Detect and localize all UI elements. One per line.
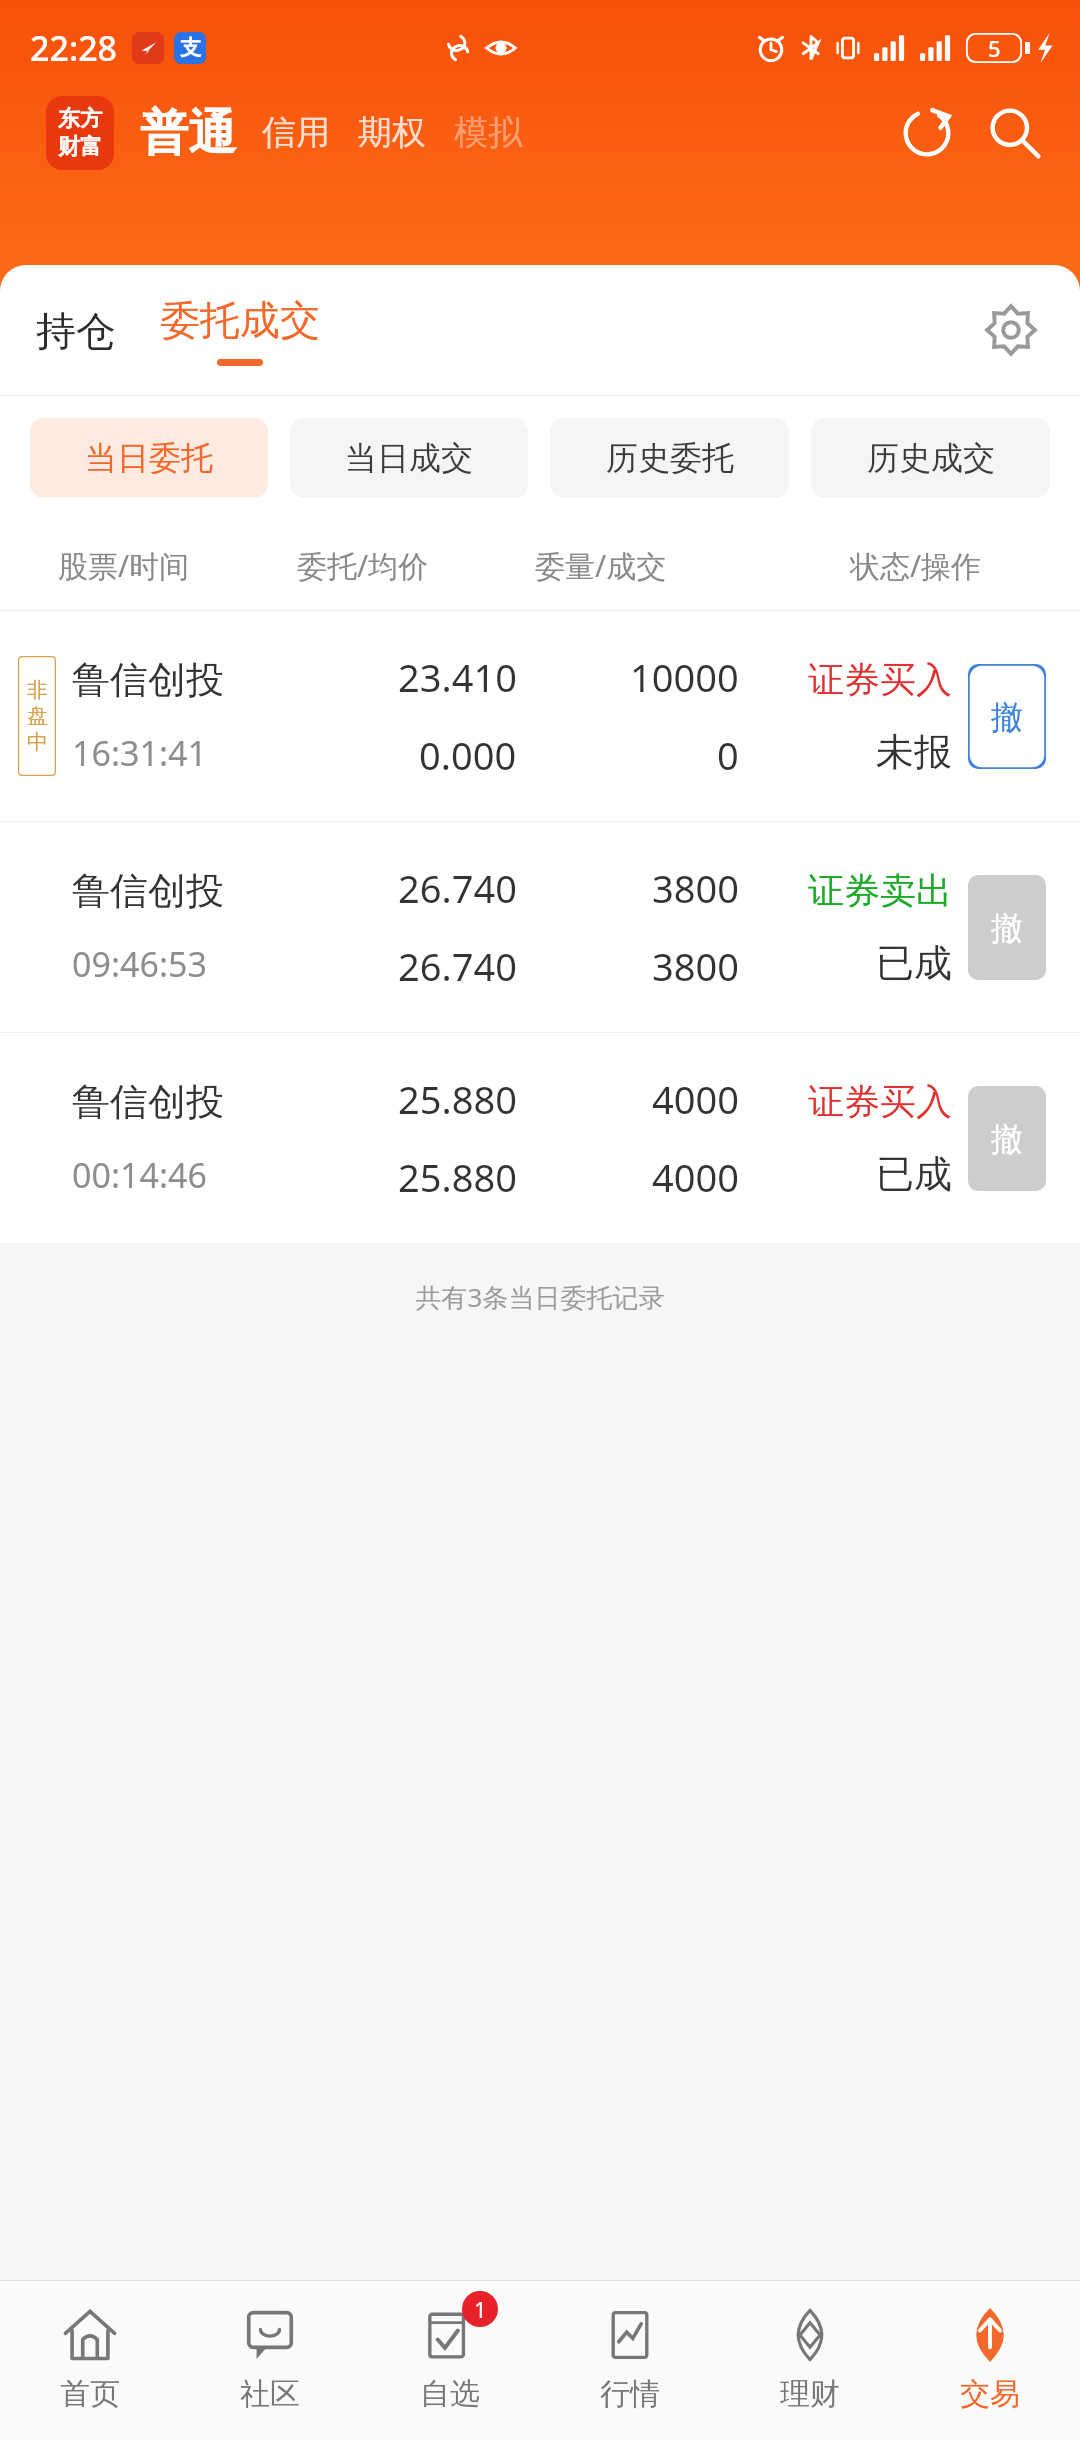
staticText: 支 xyxy=(180,35,201,61)
button[interactable]: 当日成交 xyxy=(290,418,528,498)
staticText: 撤 xyxy=(991,1119,1023,1159)
button[interactable]: 持仓 xyxy=(36,290,116,372)
button[interactable]: 鲁信创投 xyxy=(0,1033,1080,1243)
staticText: 交易 xyxy=(960,2375,1020,2413)
staticText: 首页 xyxy=(60,2375,120,2413)
button[interactable]: 撤 xyxy=(968,664,1046,769)
button[interactable]: 委托成交 xyxy=(160,287,320,374)
button[interactable]: 理财 xyxy=(720,2280,900,2440)
staticText: 鲁信创投 xyxy=(72,656,224,704)
staticText: 09:46:53 xyxy=(72,941,207,987)
button[interactable]: 模拟 xyxy=(454,111,522,154)
staticText: 4000 xyxy=(652,1073,739,1125)
staticText: 未报 xyxy=(876,728,952,776)
button[interactable]: 当日委托 xyxy=(30,418,268,498)
staticText: 00:14:46 xyxy=(72,1152,207,1198)
button[interactable]: 鲁信创投 xyxy=(0,822,1080,1032)
staticText: 25.880 xyxy=(398,1073,517,1125)
staticText: 共有3条当日委托记录 xyxy=(0,1279,1080,1315)
staticText: 盘 xyxy=(27,703,48,729)
staticText: 26.740 xyxy=(398,862,517,914)
staticText: 1 xyxy=(474,2294,487,2324)
staticText: 委托成交 xyxy=(160,295,320,345)
staticText: 鲁信创投 xyxy=(72,1078,224,1126)
staticText: 状态/操作 xyxy=(785,545,1046,586)
staticText: 25.880 xyxy=(398,1151,517,1203)
button[interactable]: 普通 xyxy=(140,103,236,163)
button[interactable]: 历史成交 xyxy=(811,418,1050,498)
staticText: 已成 xyxy=(876,1150,952,1198)
staticText: 历史委托 xyxy=(606,438,734,478)
staticText: 财富 xyxy=(58,133,102,161)
staticText: 证券买入 xyxy=(808,1079,952,1124)
button[interactable]: 行情 xyxy=(540,2280,720,2440)
button[interactable]: 社区 xyxy=(180,2280,360,2440)
staticText: 股票/时间 xyxy=(58,545,297,586)
button[interactable]: 刷新 xyxy=(888,95,966,170)
staticText: 撤 xyxy=(991,908,1023,948)
staticText: 证券卖出 xyxy=(808,868,952,913)
button[interactable]: 信用 xyxy=(262,111,330,154)
button[interactable]: 东方财富 xyxy=(46,96,114,170)
staticText: 东方 xyxy=(58,105,102,133)
staticText: 26.740 xyxy=(398,940,517,992)
staticText: 证券买入 xyxy=(808,657,952,702)
staticText: 委量/成交 xyxy=(535,545,785,586)
staticText: 鲁信创投 xyxy=(72,867,224,915)
staticText: 0 xyxy=(717,729,739,781)
button[interactable]: 历史委托 xyxy=(550,418,789,498)
button[interactable]: 非 xyxy=(0,611,1080,821)
staticText: 当日委托 xyxy=(85,438,213,478)
button[interactable]: 撤 xyxy=(968,875,1046,980)
staticText: 中 xyxy=(27,729,48,755)
button[interactable]: 撤 xyxy=(968,1086,1046,1191)
staticText: 理财 xyxy=(780,2375,840,2413)
staticText: 非 xyxy=(27,677,48,703)
button[interactable]: 交易 xyxy=(900,2280,1080,2440)
button[interactable]: 搜索 xyxy=(976,95,1054,170)
staticText: 行情 xyxy=(600,2375,660,2413)
staticText: 5 xyxy=(988,33,1001,63)
staticText: 16:31:41 xyxy=(72,730,207,776)
staticText: 自选 xyxy=(420,2375,480,2413)
staticText: 4000 xyxy=(652,1151,739,1203)
staticText: 0.000 xyxy=(419,729,517,781)
staticText: 23.410 xyxy=(398,651,517,703)
staticText: 社区 xyxy=(240,2375,300,2413)
staticText: 历史成交 xyxy=(867,438,995,478)
staticText: 委托/均价 xyxy=(297,545,535,586)
staticText: 10000 xyxy=(630,651,739,703)
button[interactable]: 首页 xyxy=(0,2280,180,2440)
button[interactable]: 设置 xyxy=(972,291,1050,369)
staticText: 持仓 xyxy=(36,306,116,356)
staticText: 撤 xyxy=(991,697,1023,737)
staticText: 已成 xyxy=(876,939,952,987)
staticText: 3800 xyxy=(652,862,739,914)
button[interactable]: 1 xyxy=(360,2280,540,2440)
staticText: 3800 xyxy=(652,940,739,992)
staticText: 当日成交 xyxy=(345,438,473,478)
staticText: 22:28 xyxy=(30,25,118,71)
button[interactable]: 期权 xyxy=(358,111,426,154)
